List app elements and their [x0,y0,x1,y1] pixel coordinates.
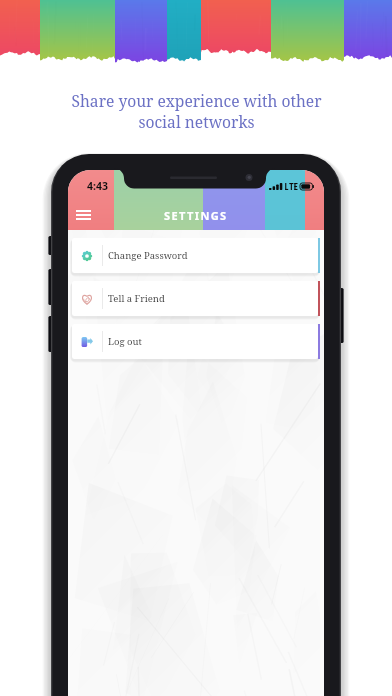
button[interactable]: Log out [72,324,320,359]
button[interactable]: Tell a Friend [72,281,320,316]
button[interactable]: Change Password [72,238,320,273]
staticText: Log out [108,335,142,348]
staticText: Change Password [108,249,188,262]
button[interactable]: Open navigation menu [68,200,99,230]
staticText: Share your experience with other social … [71,90,322,133]
staticText: Tell a Friend [108,292,165,305]
staticText: SETTINGS [164,208,228,223]
staticText: 4:43 [87,179,108,193]
